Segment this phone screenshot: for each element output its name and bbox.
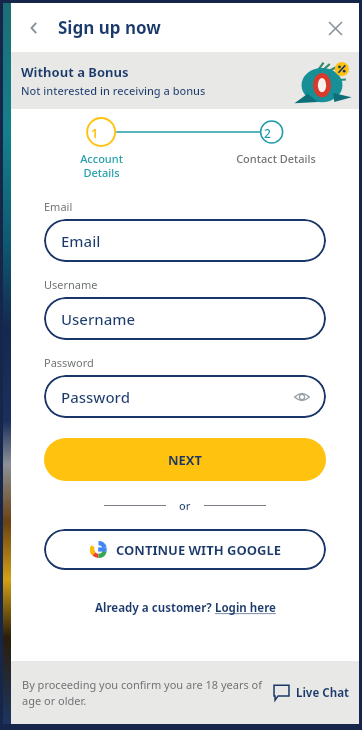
staticText: Live Chat [296,685,350,701]
button[interactable]: Close [319,12,351,44]
button[interactable]: Back [17,11,51,45]
button[interactable]: NEXT [44,438,326,481]
staticText: Password [61,387,130,407]
staticText: Username [61,309,136,329]
button[interactable]: Without a Bonus [11,52,359,109]
staticText: Email [61,231,101,251]
staticText: Username [44,277,98,292]
staticText: By proceeding you confirm you are 18 yea… [22,677,263,708]
staticText: Not interested in receiving a bonus [21,83,206,98]
staticText: Password [44,355,94,370]
staticText: Sign up now [58,16,161,39]
staticText: 2 [264,125,271,141]
staticText: Contact Details [236,151,316,166]
button[interactable]: Live Chat [273,684,350,701]
button[interactable]: Password [44,375,326,418]
staticText: 1 [91,124,99,142]
staticText: Without a Bonus [21,63,129,81]
button[interactable]: Username [44,297,326,340]
button[interactable]: CONTINUE WITH GOOGLE [44,529,326,570]
staticText: Already a customer? [95,600,215,616]
staticText: NEXT [168,451,203,469]
button[interactable]: Email [44,219,326,262]
staticText: CONTINUE WITH GOOGLE [116,541,281,559]
staticText: Email [44,199,73,214]
staticText: Account Details [80,151,123,180]
button[interactable]: Show password [291,386,313,408]
staticText: or [179,498,191,513]
button[interactable]: Login here [215,600,276,616]
staticText: Login here [215,600,276,616]
